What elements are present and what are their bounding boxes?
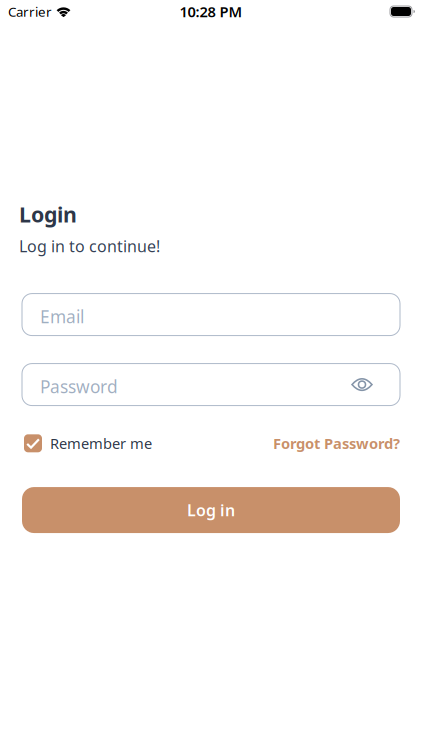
button[interactable]: Forgot Password? <box>273 434 400 453</box>
button[interactable]: Log in <box>22 487 400 533</box>
staticText: Log in to continue! <box>19 235 160 256</box>
staticText: Email <box>40 305 84 328</box>
staticText: Carrier <box>8 3 52 20</box>
button[interactable]: Password <box>22 364 400 406</box>
staticText: Login <box>19 200 77 228</box>
staticText: Forgot Password? <box>273 434 400 453</box>
staticText: 10:28 PM <box>179 2 242 21</box>
button[interactable]: Remember me <box>24 434 152 453</box>
button[interactable]: Show password <box>351 378 373 392</box>
button[interactable]: Email <box>22 294 400 336</box>
staticText: Remember me <box>50 434 152 453</box>
staticText: Log in <box>187 499 235 521</box>
staticText: Password <box>40 375 118 398</box>
